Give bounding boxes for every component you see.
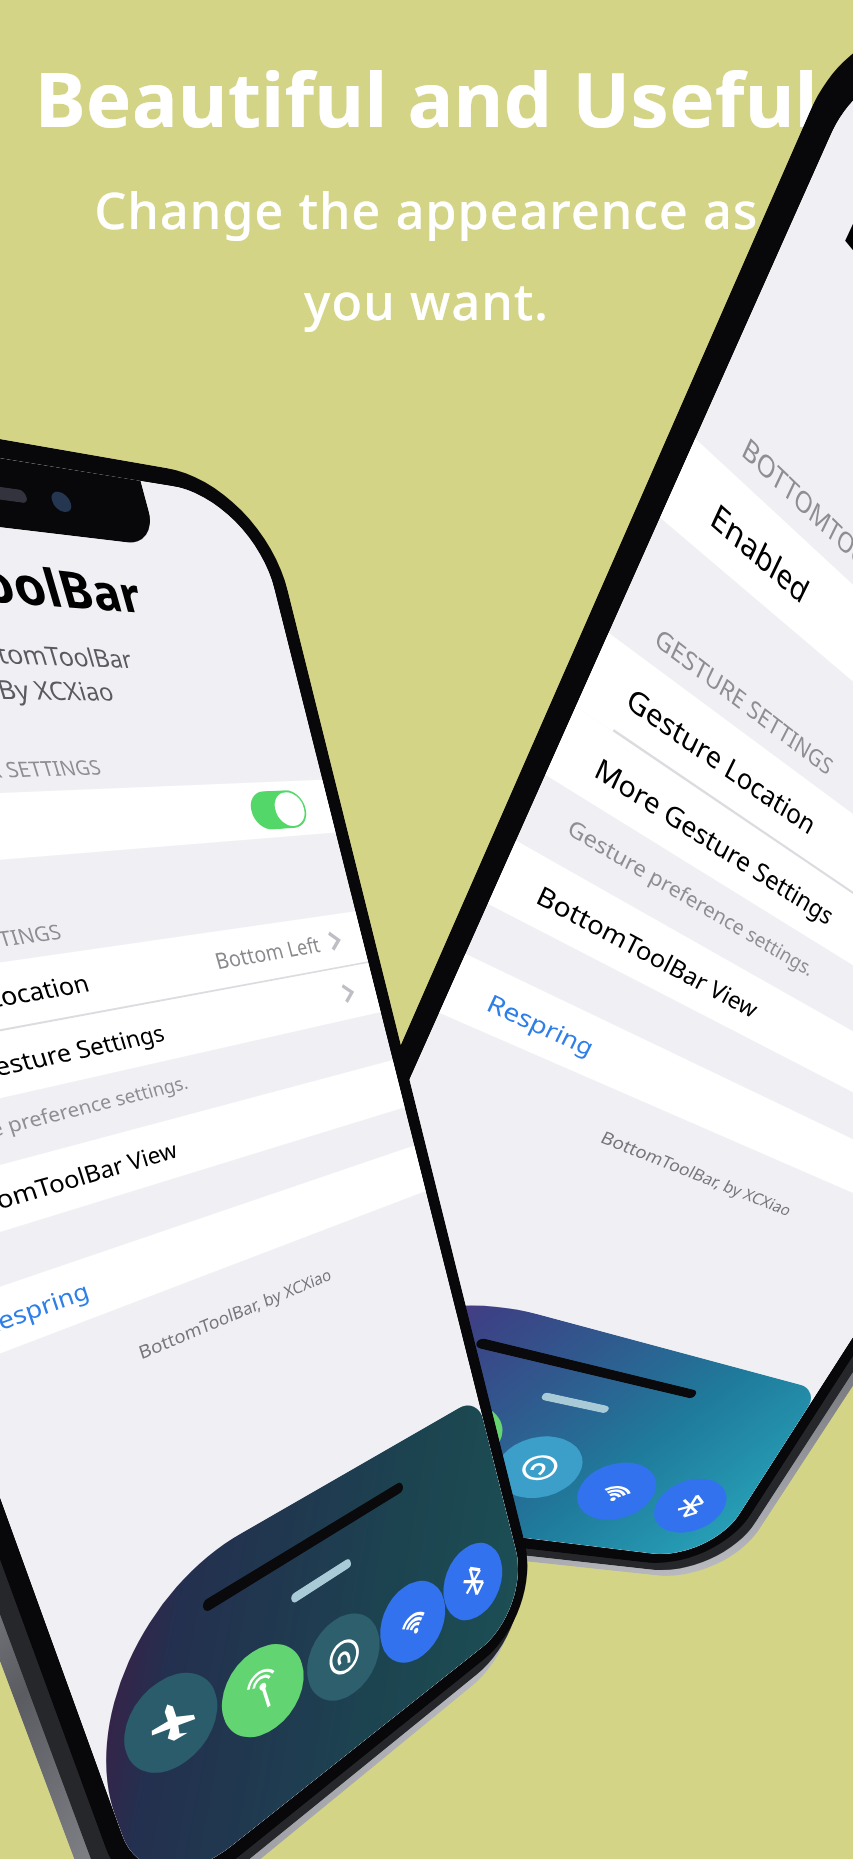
button[interactable]: BottomToolBar View: [488, 840, 853, 1153]
staticText: GESTURE SETTINGS: [0, 917, 66, 974]
button[interactable]: Airplane mode: [291, 1346, 428, 1437]
staticText: BottomToolBar, by XCXiao: [411, 1050, 853, 1265]
staticText: Gesture preference settings.: [0, 1069, 191, 1162]
staticText: Respring: [0, 1273, 93, 1343]
button[interactable]: Respring: [0, 1145, 426, 1371]
button[interactable]: Gesture Location: [0, 911, 368, 1059]
staticText: More Gesture Settings: [589, 747, 841, 932]
button[interactable]: AirDrop: [482, 1429, 596, 1503]
staticText: Gesture preference settings.: [563, 812, 819, 982]
button[interactable]: More Gesture Settings: [0, 963, 381, 1129]
button[interactable]: Respring: [439, 954, 853, 1224]
button[interactable]: BottomToolBar View: [0, 1060, 405, 1258]
staticText: Change the appearence as you want.: [0, 176, 853, 334]
staticText: BottomToolBar View: [531, 876, 764, 1024]
button[interactable]: Cellular data: [392, 1393, 516, 1474]
staticText: Respring: [482, 985, 601, 1062]
staticText: GESTURE SETTINGS: [650, 620, 839, 783]
button[interactable]: More Gesture Settings: [545, 706, 853, 1071]
staticText: Gesture Location: [621, 676, 823, 842]
staticText: Enabled: [705, 490, 817, 612]
staticText: Gesture Location: [0, 965, 93, 1035]
button[interactable]: Airplane mode: [112, 1654, 228, 1794]
button[interactable]: Enabled: [660, 438, 853, 913]
staticText: BOTTOMTOOLBAR SETTINGS: [0, 753, 104, 792]
button[interactable]: Wi-Fi: [372, 1566, 453, 1679]
button[interactable]: Gesture Location: [577, 633, 853, 1027]
button[interactable]: Enabled: [0, 780, 336, 878]
staticText: BottomToolBar By XCXiao: [0, 617, 305, 711]
button[interactable]: AirDrop: [297, 1597, 388, 1718]
staticText: BottomToolBar: [0, 513, 150, 627]
button[interactable]: Wi-Fi: [564, 1456, 669, 1524]
staticText: BOTTOMTOOLBAR SETTINGS: [736, 427, 853, 687]
button[interactable]: Bluetooth: [641, 1473, 739, 1537]
staticText: Bottom Left: [211, 929, 323, 975]
staticText: Beautiful and Useful: [0, 46, 853, 150]
button[interactable]: Bluetooth: [436, 1529, 509, 1635]
staticText: BottomToolBar By XCXiao: [743, 236, 853, 803]
button[interactable]: Cellular data: [211, 1626, 313, 1757]
staticText: BottomToolBar: [831, 160, 853, 603]
staticText: BottomToolBar View: [0, 1133, 180, 1232]
staticText: BottomToolBar, by XCXiao: [0, 1220, 438, 1436]
staticText: More Gesture Settings: [0, 1016, 169, 1104]
